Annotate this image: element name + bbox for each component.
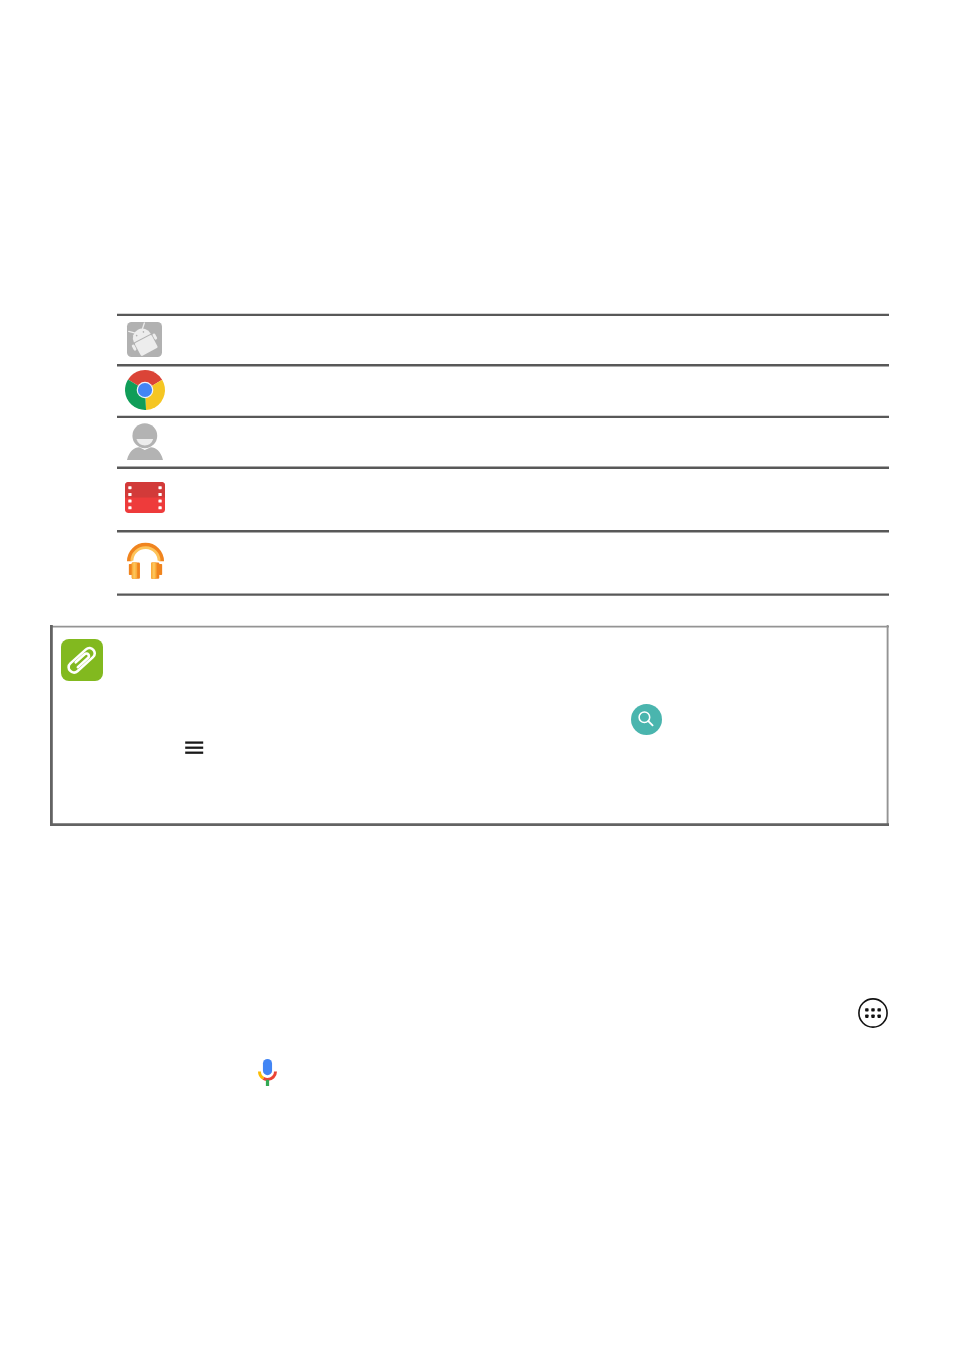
button[interactable]: Play Music	[117, 532, 889, 595]
button[interactable]: Attach file	[61, 639, 103, 681]
button[interactable]: All apps	[858, 998, 888, 1028]
button[interactable]: Voice search	[258, 1059, 277, 1086]
button[interactable]: Attach file	[50, 625, 889, 826]
button[interactable]: Menu	[183, 736, 205, 758]
button[interactable]: Contacts	[117, 418, 889, 468]
button[interactable]: Play Movies	[117, 469, 889, 531]
button[interactable]: Search	[631, 704, 662, 735]
button[interactable]: Chrome	[117, 366, 889, 417]
button[interactable]: Android app	[117, 316, 889, 365]
